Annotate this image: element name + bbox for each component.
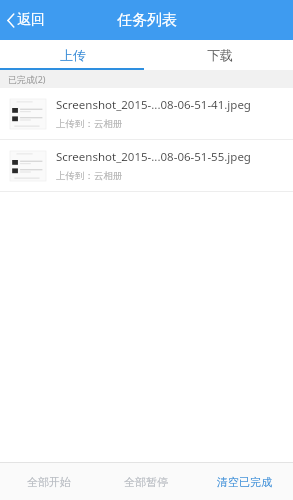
staticText: Screenshot_2015-...08-06-51-55.jpeg [56, 149, 251, 165]
button[interactable]: 返回 [0, 0, 55, 40]
button[interactable]: 全部开始 [0, 463, 97, 500]
staticText: Screenshot_2015-...08-06-51-41.jpeg [56, 97, 251, 113]
button[interactable]: 下载 [146, 40, 293, 70]
staticText: 上传到：云相册 [56, 170, 123, 182]
staticText: 上传到：云相册 [56, 118, 123, 130]
staticText: 已完成(2) [8, 73, 46, 85]
staticText: 清空已完成 [217, 475, 272, 489]
staticText: 返回 [17, 11, 45, 29]
staticText: 任务列表 [117, 11, 177, 30]
staticText: 全部暂停 [124, 475, 168, 489]
button[interactable]: 上传 [0, 40, 146, 70]
button[interactable]: Screenshot_2015-...08-06-51-55.jpeg [0, 140, 293, 191]
button[interactable]: Screenshot_2015-...08-06-51-41.jpeg [0, 88, 293, 139]
button[interactable]: 全部暂停 [97, 463, 195, 500]
button[interactable]: 清空已完成 [195, 463, 293, 500]
staticText: 上传 [60, 47, 86, 63]
staticText: 下载 [207, 47, 233, 63]
staticText: 全部开始 [27, 475, 71, 489]
